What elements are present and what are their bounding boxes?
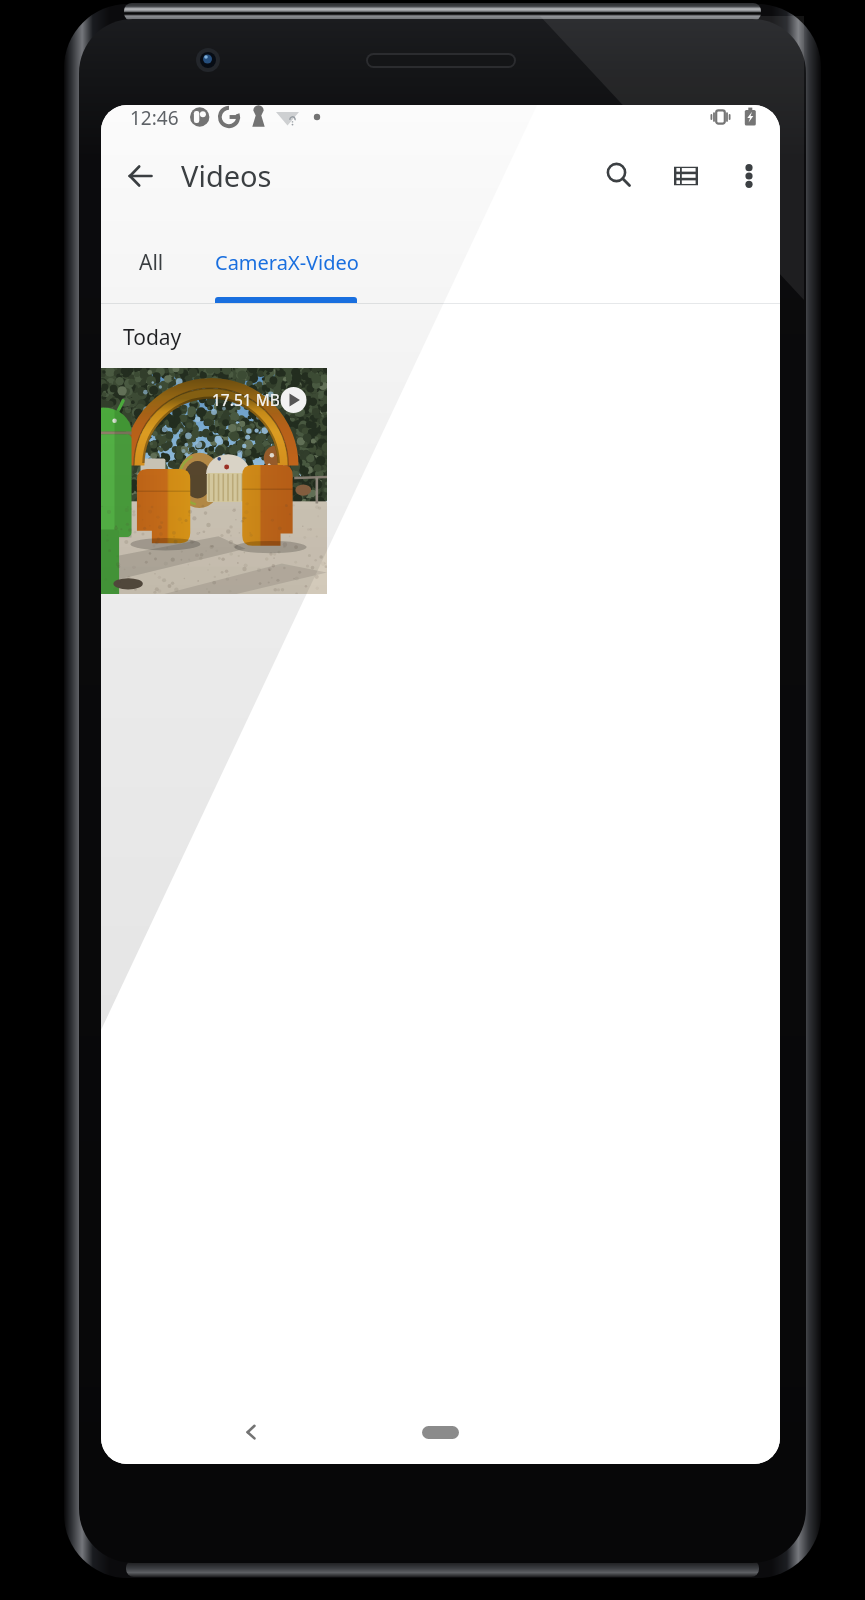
button[interactable]: More options (725, 152, 773, 200)
staticText: 12:46 (130, 105, 179, 131)
button[interactable]: All (115, 211, 187, 297)
button[interactable]: Search (595, 152, 643, 200)
staticText: CameraX-Video (215, 249, 359, 276)
button[interactable]: Back (226, 1408, 274, 1456)
staticText: 17.51 MB (212, 389, 280, 410)
staticText: All (139, 248, 164, 277)
button[interactable]: Switch to list view (662, 152, 710, 200)
button[interactable]: Home (404, 1409, 477, 1455)
button[interactable]: Navigate up (115, 152, 163, 200)
button[interactable]: Play video, 17.51 MB (101, 368, 327, 594)
staticText: Videos (181, 156, 272, 195)
staticText: Today (123, 323, 182, 352)
button[interactable]: CameraX-Video (191, 211, 383, 297)
